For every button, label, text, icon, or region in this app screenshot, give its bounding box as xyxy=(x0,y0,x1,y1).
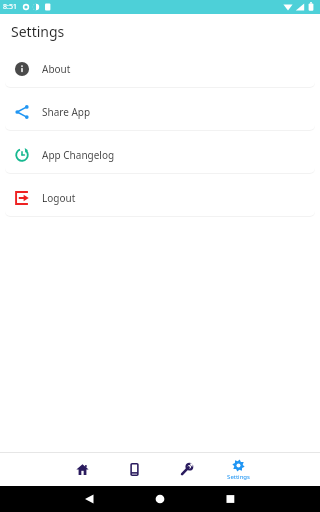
button[interactable]: Tools xyxy=(160,453,212,486)
staticText: Settings xyxy=(227,473,250,481)
staticText: About xyxy=(42,62,71,76)
staticText: App Changelog xyxy=(42,148,115,162)
staticText: Settings xyxy=(11,22,65,41)
button[interactable]: Logout xyxy=(5,180,315,216)
button[interactable]: Share App xyxy=(5,94,315,130)
button[interactable]: About xyxy=(5,51,315,87)
button[interactable]: Settings xyxy=(212,453,264,486)
button[interactable]: Home xyxy=(56,453,108,486)
staticText: Share App xyxy=(42,105,91,119)
staticText: Logout xyxy=(42,191,76,205)
button[interactable]: Devices xyxy=(108,453,160,486)
staticText: 8:51 xyxy=(3,2,17,12)
button[interactable]: App Changelog xyxy=(5,137,315,173)
